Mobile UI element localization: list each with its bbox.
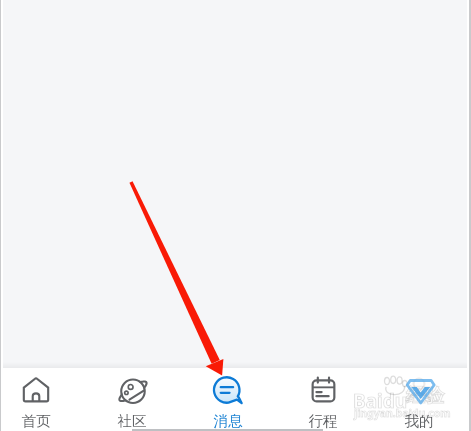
button[interactable]: 消息 bbox=[181, 368, 275, 431]
button[interactable]: 我的 bbox=[372, 368, 466, 431]
staticText: 我的 bbox=[372, 412, 466, 430]
staticText: 行程 bbox=[276, 412, 370, 430]
staticText: 经验 bbox=[406, 384, 444, 408]
button[interactable]: 首页 bbox=[0, 368, 83, 431]
staticText: Baidu bbox=[353, 388, 408, 414]
staticText: 首页 bbox=[0, 412, 83, 430]
staticText: 社区 bbox=[85, 412, 179, 430]
button[interactable]: 行程 bbox=[276, 368, 370, 431]
staticText: jingyan.baidu.com bbox=[354, 406, 451, 420]
button[interactable]: 社区 bbox=[85, 368, 179, 431]
staticText: 消息 bbox=[181, 412, 275, 430]
